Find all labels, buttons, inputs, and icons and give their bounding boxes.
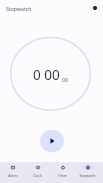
staticText: Alarm: [8, 173, 18, 177]
button[interactable]: Stopwatch: [75, 162, 100, 183]
staticText: 0 00: [33, 66, 60, 84]
staticText: Timer: [58, 173, 67, 177]
staticText: 00: [62, 76, 68, 83]
button[interactable]: Start: [40, 130, 64, 152]
staticText: Clock: [33, 173, 42, 177]
button[interactable]: Settings: [88, 1, 101, 14]
staticText: Stopwatch: [6, 5, 32, 12]
button[interactable]: Stopwatch: [6, 2, 32, 15]
button[interactable]: Clock: [25, 162, 50, 183]
staticText: Stopwatch: [79, 173, 96, 177]
button[interactable]: Timer: [50, 162, 75, 183]
button[interactable]: Alarm: [0, 162, 25, 183]
